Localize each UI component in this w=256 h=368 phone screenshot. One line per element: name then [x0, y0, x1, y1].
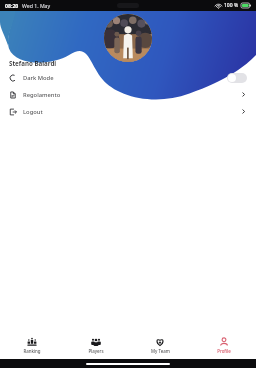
button[interactable]: My Team	[128, 332, 192, 359]
button[interactable]: Dark mode toggle	[227, 73, 247, 83]
button[interactable]: Regolamento	[0, 86, 256, 103]
staticText: My Team	[151, 348, 170, 354]
staticText: Dark Mode	[23, 74, 54, 82]
staticText: 08:20	[5, 2, 19, 9]
button[interactable]: Profile	[192, 332, 256, 359]
staticText: 100 %	[224, 2, 239, 9]
button[interactable]: Ranking	[0, 332, 64, 359]
staticText: Profile	[217, 348, 231, 354]
button[interactable]: Logout	[0, 103, 256, 120]
staticText: Regolamento	[23, 91, 61, 99]
button[interactable]: Dark Mode	[0, 69, 256, 86]
staticText: Ranking	[23, 348, 41, 354]
staticText: Stefano Balardi	[9, 59, 57, 67]
staticText: Wed 1. May	[22, 2, 51, 9]
staticText: Players	[88, 348, 104, 354]
button[interactable]: Players	[64, 332, 128, 359]
button[interactable]: Profile photo	[104, 14, 152, 62]
staticText: Logout	[23, 108, 43, 116]
